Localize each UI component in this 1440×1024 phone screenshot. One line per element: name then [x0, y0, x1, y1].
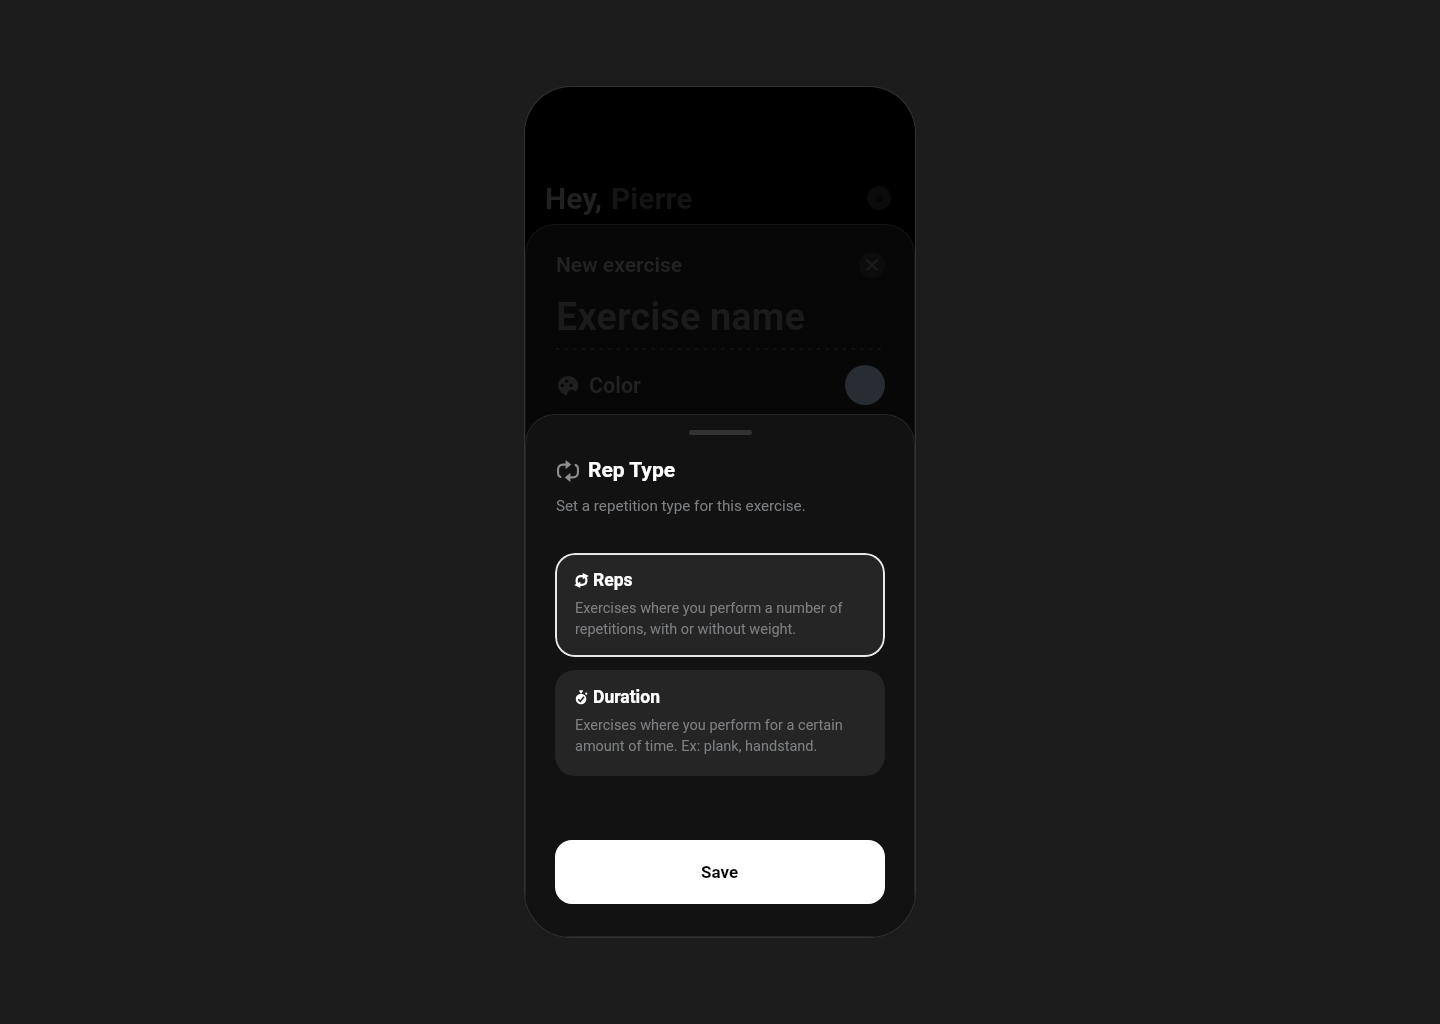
staticText: Save [701, 862, 739, 882]
staticText: Pierre [611, 181, 693, 216]
staticText: Reps [593, 570, 633, 590]
button[interactable]: Close [859, 252, 885, 278]
staticText: Exercises where you perform for a certai… [575, 717, 843, 754]
staticText: Hey, [545, 181, 610, 216]
button[interactable]: Duration [555, 670, 885, 776]
button[interactable]: Reps [555, 553, 885, 657]
staticText: Exercises where you perform a number of … [575, 600, 843, 637]
staticText: Rep Type [588, 458, 676, 483]
staticText: Duration [593, 687, 660, 707]
staticText: Exercise name [556, 295, 805, 340]
staticText: Set a repetition type for this exercise. [556, 497, 806, 515]
button[interactable]: Save [555, 840, 885, 904]
button[interactable]: Profile [867, 186, 891, 210]
staticText: Color [589, 373, 641, 398]
staticText: New exercise [556, 253, 683, 278]
